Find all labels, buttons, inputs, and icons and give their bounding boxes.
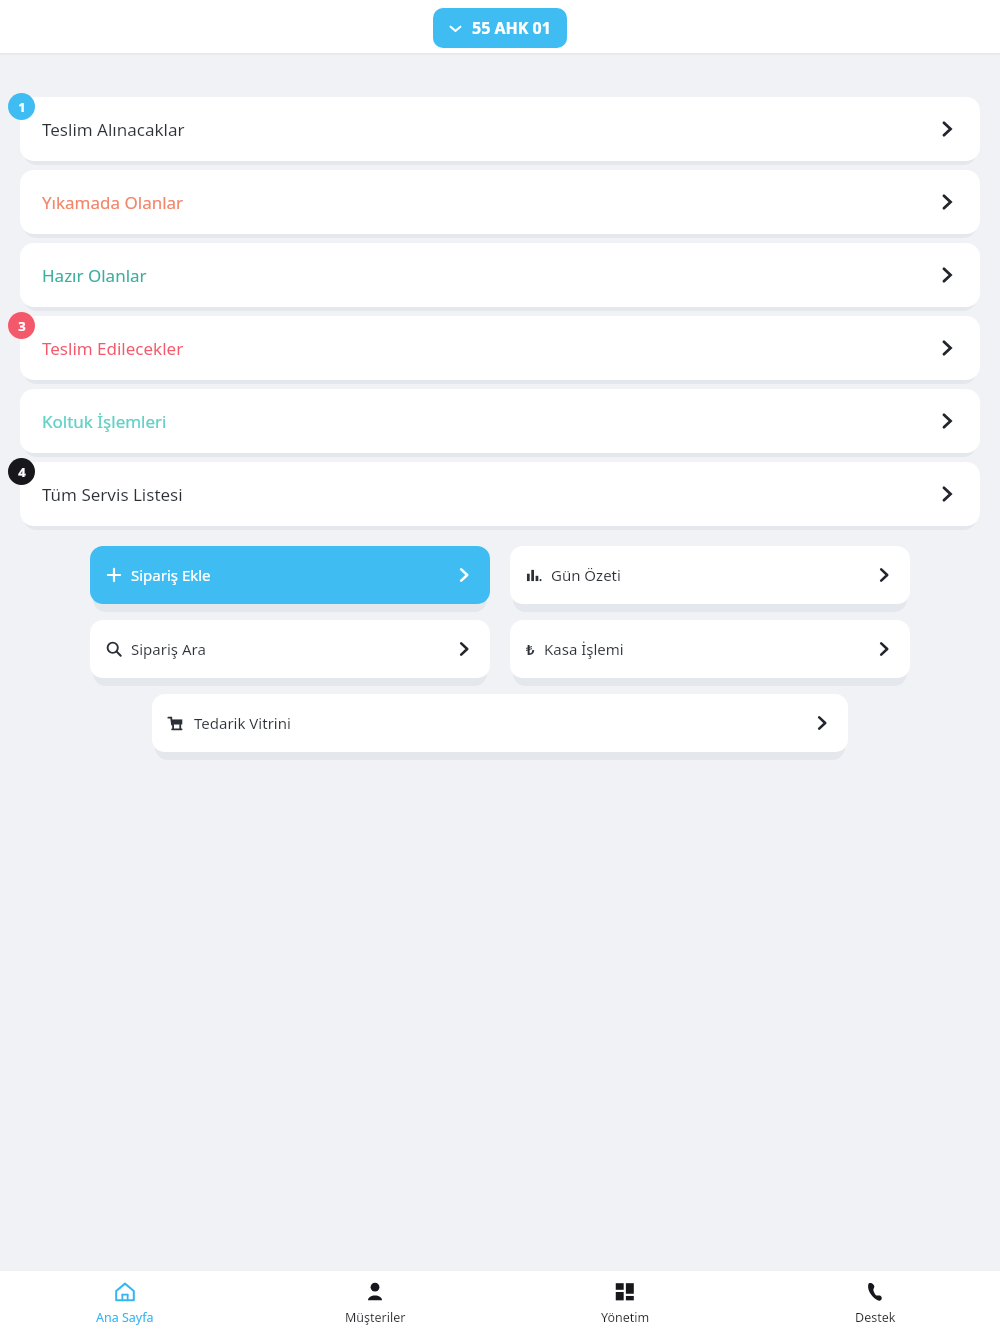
staticText: Sipariş Ekle — [131, 565, 211, 585]
staticText: 3 — [18, 317, 26, 335]
button[interactable]: Koltuk İşlemleri — [20, 389, 980, 453]
button[interactable]: Gün Özeti — [510, 546, 910, 604]
button[interactable]: ₺ — [510, 620, 910, 678]
staticText: 4 — [18, 463, 26, 481]
button[interactable]: Yıkamada Olanlar — [20, 170, 980, 234]
staticText: Müşteriler — [345, 1309, 406, 1326]
staticText: Yönetim — [601, 1309, 650, 1326]
button[interactable]: Müşteriler — [250, 1273, 500, 1334]
button[interactable]: Sipariş Ekle — [90, 546, 490, 604]
staticText: 55 AHK 01 — [472, 17, 551, 39]
button[interactable]: Ana Sayfa — [0, 1273, 250, 1334]
staticText: Ana Sayfa — [96, 1309, 154, 1326]
button[interactable]: Tedarik Vitrini — [152, 694, 848, 752]
button[interactable]: Hazır Olanlar — [20, 243, 980, 307]
staticText: Tüm Servis Listesi — [42, 483, 183, 506]
staticText: Teslim Alınacaklar — [42, 118, 185, 141]
staticText: Tedarik Vitrini — [194, 713, 291, 733]
staticText: ₺ — [526, 639, 535, 659]
staticText: Destek — [855, 1309, 896, 1326]
staticText: Sipariş Ara — [131, 639, 206, 659]
button[interactable]: Teslim Alınacaklar — [20, 97, 980, 161]
staticText: Gün Özeti — [551, 565, 621, 585]
staticText: Kasa İşlemi — [544, 639, 624, 659]
staticText: 1 — [18, 98, 26, 116]
button[interactable]: Yönetim — [500, 1273, 750, 1334]
staticText: Yıkamada Olanlar — [42, 191, 184, 214]
button[interactable]: Sipariş Ara — [90, 620, 490, 678]
button[interactable]: Tüm Servis Listesi — [20, 462, 980, 526]
staticText: Hazır Olanlar — [42, 264, 147, 287]
staticText: Teslim Edilecekler — [42, 337, 184, 360]
button[interactable]: 55 AHK 01 — [433, 8, 567, 48]
button[interactable]: Teslim Edilecekler — [20, 316, 980, 380]
staticText: Koltuk İşlemleri — [42, 410, 167, 433]
button[interactable]: Destek — [750, 1273, 1000, 1334]
